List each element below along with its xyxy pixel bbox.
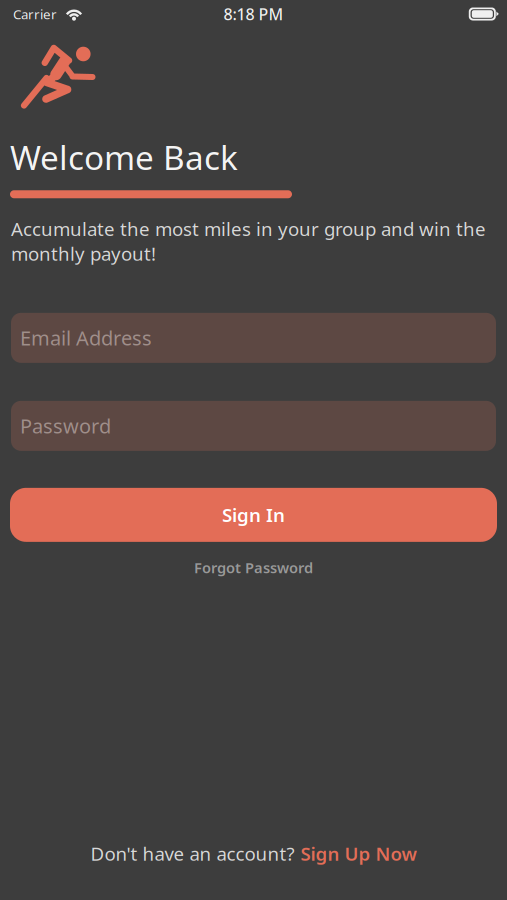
staticText: Carrier — [13, 5, 57, 23]
staticText: Sign Up Now — [300, 841, 416, 866]
button[interactable]: Sign In — [10, 488, 497, 542]
button[interactable]: Sign Up Now — [300, 841, 416, 866]
staticText: Sign In — [222, 502, 285, 527]
staticText: Email Address — [20, 325, 152, 351]
button[interactable]: Forgot Password — [0, 558, 507, 577]
button[interactable]: Email Address — [11, 313, 496, 363]
staticText: Don't have an account? — [90, 841, 294, 866]
staticText: Accumulate the most miles in your group … — [11, 216, 486, 266]
staticText: Welcome Back — [10, 135, 238, 179]
staticText: Password — [20, 413, 111, 439]
button[interactable]: Password — [11, 401, 496, 451]
staticText: Forgot Password — [194, 558, 313, 577]
staticText: 8:18 PM — [223, 3, 283, 25]
